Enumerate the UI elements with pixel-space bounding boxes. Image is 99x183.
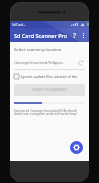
- button[interactable]: Help: [68, 29, 80, 41]
- staticText: /storage/emulated/0/Appx+: [14, 60, 76, 65]
- staticText: START SCANNING: [32, 87, 68, 93]
- staticText: Examined /storage/emulated/0/Android/dat…: [14, 108, 85, 116]
- button[interactable]: Ignore update files outside of the speci…: [14, 74, 85, 79]
- staticText: ?: [73, 31, 76, 40]
- staticText: Sd Card...: [12, 23, 26, 27]
- button[interactable]: /storage/emulated/0/Appx+: [14, 58, 85, 67]
- staticText: Sd Card Scanner Pro: [14, 32, 68, 39]
- staticText: Select scanning location: [14, 47, 62, 53]
- button[interactable]: START SCANNING: [14, 84, 85, 96]
- staticText: Ignore update files outside of the speci…: [21, 74, 85, 79]
- button[interactable]: More options: [80, 29, 87, 41]
- button[interactable]: Reset path: [76, 58, 85, 67]
- button[interactable]: Settings: [70, 141, 83, 154]
